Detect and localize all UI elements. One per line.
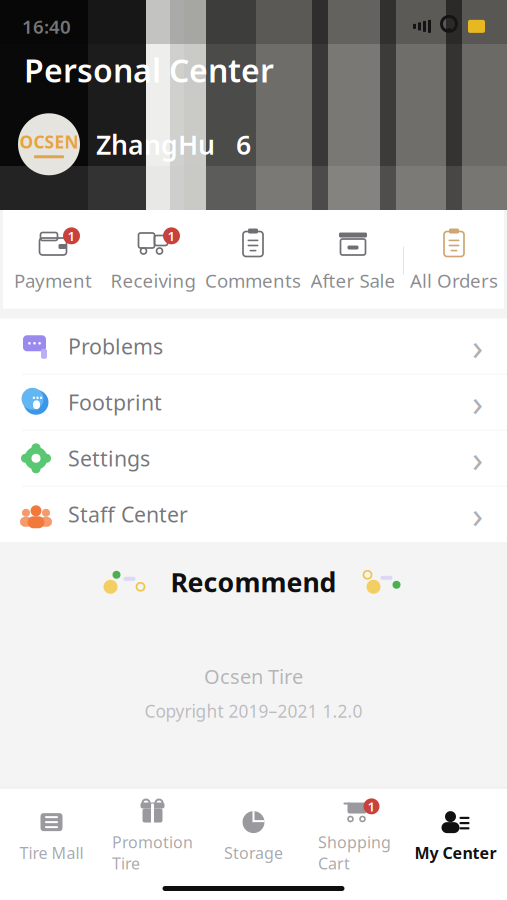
staticText: Receiving: [110, 268, 195, 293]
button[interactable]: Comments: [203, 228, 303, 293]
button[interactable]: 1: [304, 798, 405, 874]
staticText: ›: [472, 378, 483, 426]
staticText: Comments: [205, 268, 301, 293]
button[interactable]: Profile photo: [18, 113, 80, 175]
staticText: ZhangHu 6: [96, 127, 251, 162]
button[interactable]: Problems: [0, 319, 507, 374]
staticText: Payment: [14, 268, 92, 293]
staticText: Storage: [224, 842, 283, 863]
button[interactable]: All Orders: [404, 228, 504, 293]
button[interactable]: After Sale: [303, 228, 403, 293]
staticText: After Sale: [310, 268, 395, 293]
staticText: Staff Center: [68, 500, 188, 528]
staticText: Shopping Cart: [318, 831, 391, 874]
button[interactable]: Promotion Tire: [102, 798, 203, 874]
staticText: OCSEN: [19, 130, 78, 153]
staticText: Footprint: [68, 388, 162, 416]
staticText: 1: [167, 227, 175, 245]
staticText: Personal Center: [24, 49, 274, 91]
button[interactable]: Settings: [0, 431, 507, 486]
button[interactable]: Footprint: [0, 375, 507, 430]
staticText: All Orders: [410, 268, 498, 293]
staticText: 1: [67, 227, 75, 245]
button[interactable]: Tire Mall: [1, 809, 102, 863]
button[interactable]: Storage: [203, 809, 304, 863]
staticText: Problems: [68, 332, 163, 360]
staticText: Settings: [68, 444, 150, 472]
staticText: Ocsen Tire: [204, 663, 303, 689]
staticText: ›: [472, 322, 483, 370]
staticText: My Center: [414, 842, 496, 863]
button[interactable]: 1: [103, 228, 203, 293]
staticText: ›: [472, 434, 483, 482]
staticText: 16:40: [22, 14, 71, 39]
staticText: ›: [472, 490, 483, 538]
staticText: 1: [367, 797, 375, 815]
button[interactable]: My Center: [405, 809, 506, 863]
staticText: Tire Mall: [19, 842, 83, 863]
staticText: Recommend: [170, 564, 336, 599]
button[interactable]: 1: [3, 228, 103, 293]
staticText: Copyright 2019–2021 1.2.0: [144, 699, 362, 722]
staticText: Promotion Tire: [112, 831, 193, 874]
button[interactable]: Staff Center: [0, 487, 507, 542]
